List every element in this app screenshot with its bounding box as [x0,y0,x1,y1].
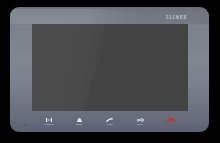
button[interactable]: Answer call [96,116,124,132]
staticText: Ключ [126,123,154,128]
staticText: Монитор [35,123,63,128]
staticText: SLINEX [166,14,188,20]
button[interactable]: Door [65,116,93,132]
staticText: Ответ [96,123,124,128]
staticText: Замок [65,123,93,128]
button[interactable]: End call [157,116,185,132]
staticText: Отбой [157,123,185,128]
button[interactable]: View camera [35,116,63,132]
button[interactable]: Open lock [126,116,154,132]
